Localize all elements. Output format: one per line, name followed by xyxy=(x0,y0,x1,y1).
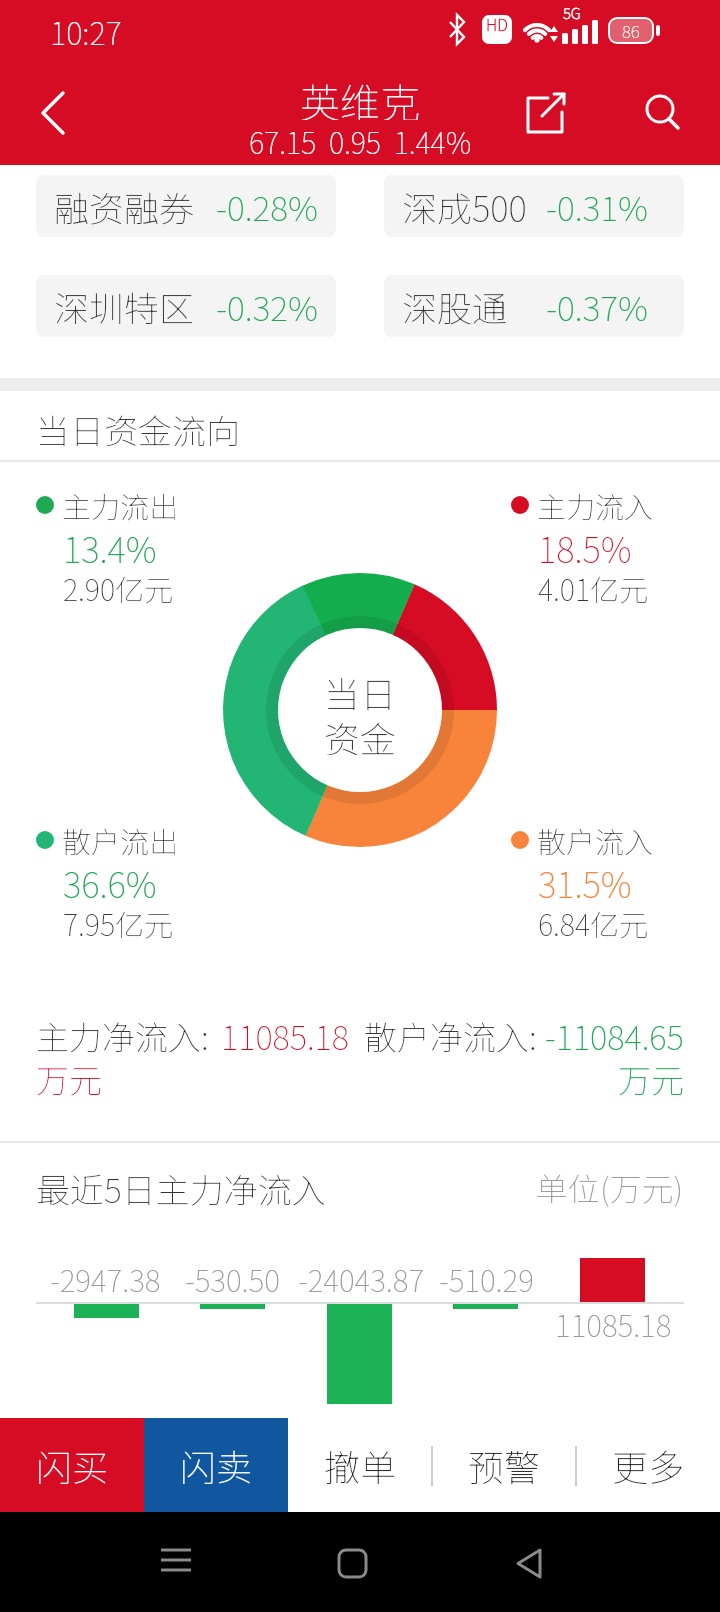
staticText: 主力流入 xyxy=(537,484,654,526)
staticText: 当日资金流向 xyxy=(36,405,240,451)
button[interactable] xyxy=(520,88,570,138)
staticText: -11084.65 xyxy=(545,1012,684,1058)
staticText: 36.6% xyxy=(63,857,157,899)
staticText: 散户流出 xyxy=(62,819,179,861)
staticText: 散户流入 xyxy=(537,819,654,861)
staticText: 更多 xyxy=(612,1439,685,1491)
staticText: -510.29 xyxy=(439,1257,534,1300)
button[interactable] xyxy=(638,88,688,138)
staticText: 深成500 xyxy=(402,181,527,232)
staticText: -0.32% xyxy=(216,282,318,331)
button[interactable]: 深圳特区 xyxy=(36,275,336,337)
staticText: HD xyxy=(486,12,508,35)
staticText: -530.50 xyxy=(185,1257,280,1300)
button[interactable]: 深成500 xyxy=(384,175,684,237)
staticText: 最近5日主力净流入 xyxy=(36,1164,326,1210)
button[interactable] xyxy=(30,88,80,138)
staticText: 主力流出 xyxy=(62,484,179,526)
staticText: 万元 xyxy=(618,1055,684,1101)
staticText: 主力净流入: xyxy=(36,1012,209,1058)
staticText: 31.5% xyxy=(538,857,632,899)
button[interactable]: 闪卖 xyxy=(144,1418,288,1512)
staticText: 散户净流入: xyxy=(364,1012,537,1058)
staticText: 深股通 xyxy=(402,281,508,332)
staticText: -2947.38 xyxy=(50,1257,161,1300)
staticText: 13.4% xyxy=(63,522,157,564)
staticText: 撤单 xyxy=(324,1439,397,1491)
button[interactable]: 融资融券 xyxy=(36,175,336,237)
staticText: 4.01亿元 xyxy=(538,567,649,609)
staticText: -0.28% xyxy=(216,182,318,231)
button[interactable]: 深股通 xyxy=(384,275,684,337)
staticText: 英维克 xyxy=(300,72,420,120)
staticText: 67.15 0.95 1.44% xyxy=(249,120,472,160)
staticText: 7.95亿元 xyxy=(63,902,174,944)
button[interactable]: 预警 xyxy=(432,1418,576,1512)
staticText: 18.5% xyxy=(538,522,632,564)
staticText: 单位(万元) xyxy=(536,1164,684,1210)
staticText: 融资融券 xyxy=(54,181,195,232)
staticText: -24043.87 xyxy=(298,1257,425,1300)
staticText: 5G xyxy=(563,2,581,24)
staticText: 资金 xyxy=(324,711,397,755)
staticText: 86 xyxy=(622,18,640,43)
staticText: 11085.18 xyxy=(555,1302,672,1345)
staticText: 闪买 xyxy=(36,1439,109,1491)
staticText: 预警 xyxy=(468,1439,541,1491)
staticText: -0.37% xyxy=(546,282,648,331)
staticText: 2.90亿元 xyxy=(63,567,174,609)
staticText: 万元 xyxy=(36,1055,102,1101)
staticText: 当日 xyxy=(324,666,397,710)
staticText: 深圳特区 xyxy=(54,281,195,332)
button[interactable]: 更多 xyxy=(576,1418,720,1512)
staticText: 10:27 xyxy=(50,9,122,54)
staticText: -0.31% xyxy=(546,182,648,231)
button[interactable]: 闪买 xyxy=(0,1418,144,1512)
staticText: 11085.18 xyxy=(221,1012,349,1058)
button[interactable]: 撤单 xyxy=(288,1418,432,1512)
staticText: 6.84亿元 xyxy=(538,902,649,944)
staticText: 闪卖 xyxy=(180,1439,253,1491)
